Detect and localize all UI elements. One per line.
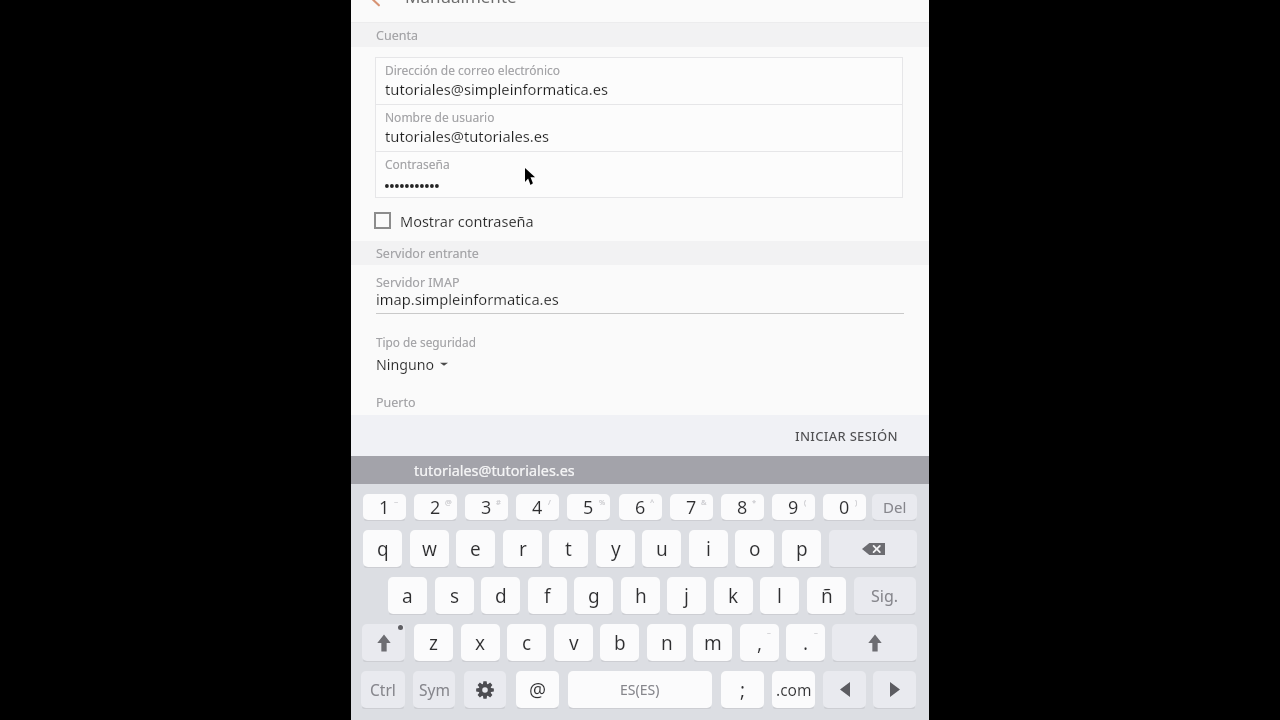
staticText: h [635, 583, 647, 609]
staticText: x [475, 630, 486, 656]
staticText: u [656, 536, 668, 562]
staticText: Puerto [376, 394, 416, 411]
button[interactable]: 7 [670, 494, 713, 520]
staticText: m [704, 630, 722, 656]
button[interactable]: 9 [772, 494, 815, 520]
button[interactable]: r [503, 530, 542, 567]
button[interactable]: ; [721, 671, 764, 708]
button[interactable]: 0 [823, 494, 866, 520]
staticText: – [767, 627, 771, 637]
button[interactable]: 1 [363, 494, 406, 520]
button[interactable]: p [782, 530, 821, 567]
button[interactable]: s [435, 577, 474, 614]
button[interactable]: u [642, 530, 681, 567]
button[interactable]: 8 [721, 494, 764, 520]
staticText: 4 [532, 495, 543, 520]
button[interactable]: ◀ [823, 671, 866, 708]
button[interactable]: Back [351, 0, 929, 20]
button[interactable]: Mostrar contraseña [374, 207, 584, 234]
staticText: & [701, 497, 707, 507]
button[interactable]: ñ [807, 577, 846, 614]
button[interactable]: 2 [414, 494, 457, 520]
button[interactable]: l [760, 577, 799, 614]
button[interactable]: w [410, 530, 449, 567]
staticText: 1 [379, 495, 390, 520]
button[interactable]: 3 [465, 494, 508, 520]
button[interactable]: Sig. [854, 577, 916, 614]
staticText: Servidor IMAP [376, 274, 460, 291]
staticText: a [402, 583, 413, 609]
staticText: # [496, 497, 501, 507]
button[interactable]: c [507, 624, 546, 661]
button[interactable]: 4 [516, 494, 559, 520]
staticText: n [661, 630, 673, 656]
button[interactable]: q [363, 530, 402, 567]
button[interactable]: Ctrl [361, 671, 405, 708]
button[interactable]: Contraseña [375, 151, 903, 198]
staticText: k [728, 583, 739, 609]
button[interactable]: d [481, 577, 520, 614]
staticText: q [377, 536, 389, 562]
button[interactable]: @ [516, 671, 559, 708]
staticText: Cuenta [376, 27, 418, 44]
staticText: Mostrar contraseña [400, 211, 534, 231]
button[interactable]: .com [772, 671, 815, 708]
button[interactable]: . [786, 624, 825, 661]
button[interactable]: ⌫ [829, 530, 917, 567]
button[interactable]: , [740, 624, 779, 661]
staticText: p [796, 536, 808, 562]
button[interactable]: Back [363, 0, 389, 12]
staticText: * [752, 497, 757, 507]
button[interactable]: x [461, 624, 500, 661]
button[interactable]: y [596, 530, 635, 567]
staticText: tutoriales@tutoriales.es [385, 126, 550, 146]
staticText: ES(ES) [620, 680, 660, 699]
staticText: Sym [419, 679, 450, 700]
button[interactable]: k [714, 577, 753, 614]
button[interactable]: Sym [413, 671, 455, 708]
button[interactable]: Dirección de correo electrónico [375, 57, 903, 104]
staticText: e [470, 536, 481, 562]
button[interactable]: b [600, 624, 639, 661]
button[interactable]: ▶ [873, 671, 916, 708]
button[interactable]: ⚙ [464, 671, 506, 708]
button[interactable]: ⇧ [832, 624, 917, 661]
button[interactable]: f [528, 577, 567, 614]
staticText: Contraseña [385, 156, 450, 172]
button[interactable]: g [574, 577, 613, 614]
staticText: Sig. [871, 585, 899, 607]
button[interactable]: h [621, 577, 660, 614]
staticText: / [548, 497, 551, 507]
button[interactable]: m [693, 624, 732, 661]
button[interactable]: o [735, 530, 774, 567]
button[interactable]: 5 [567, 494, 610, 520]
button[interactable]: z [414, 624, 453, 661]
button[interactable]: a [388, 577, 427, 614]
button[interactable]: v [554, 624, 593, 661]
staticText: Del [883, 497, 907, 517]
button[interactable]: Ninguno [376, 353, 466, 375]
button[interactable]: Del [872, 494, 917, 520]
staticText: 8 [737, 495, 748, 520]
staticText: v [569, 630, 579, 656]
staticText: imap.simpleinformatica.es [376, 289, 559, 309]
staticText: Dirección de correo electrónico [385, 62, 561, 78]
staticText: 3 [481, 495, 492, 520]
button[interactable]: ES(ES) [568, 671, 712, 708]
button[interactable]: j [667, 577, 706, 614]
staticText: tutoriales@simpleinformatica.es [385, 79, 609, 99]
button[interactable]: 6 [619, 494, 662, 520]
staticText: d [495, 583, 507, 609]
button[interactable]: n [647, 624, 686, 661]
staticText: w [422, 536, 437, 562]
button[interactable]: e [456, 530, 495, 567]
staticText: j [684, 583, 689, 609]
button[interactable]: i [689, 530, 728, 567]
button[interactable]: t [549, 530, 588, 567]
staticText: Ctrl [370, 679, 396, 700]
staticText: , [757, 630, 763, 656]
button[interactable]: INICIAR SESIÓN [787, 420, 905, 451]
staticText: t [565, 536, 572, 562]
button[interactable]: Nombre de usuario [375, 104, 903, 151]
button[interactable]: ⇧ [362, 624, 405, 661]
